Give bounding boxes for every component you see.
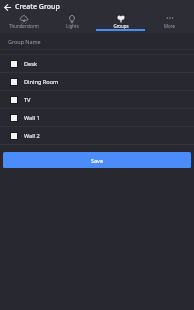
staticText: More bbox=[164, 23, 175, 29]
button[interactable]: Wall 2 bbox=[0, 127, 194, 144]
staticText: Create Group bbox=[15, 2, 60, 12]
staticText: Dining Room bbox=[24, 78, 59, 86]
button[interactable]: More bbox=[145, 14, 194, 33]
button[interactable]: Desk bbox=[0, 55, 194, 72]
button[interactable]: Save bbox=[3, 152, 191, 168]
staticText: Wall 2 bbox=[24, 132, 40, 140]
staticText: Wall 1 bbox=[24, 114, 40, 122]
staticText: Lights bbox=[66, 23, 79, 29]
button[interactable]: TV bbox=[0, 91, 194, 108]
staticText: TV bbox=[24, 96, 31, 104]
staticText: Save bbox=[91, 157, 104, 164]
button[interactable]: Wall 1 bbox=[0, 109, 194, 126]
staticText: Thunderstorm bbox=[9, 23, 39, 29]
staticText: Desk bbox=[24, 60, 37, 68]
staticText: Groups bbox=[113, 23, 129, 29]
button[interactable]: Thunderstorm bbox=[0, 14, 48, 33]
button[interactable]: Lights bbox=[48, 14, 96, 33]
staticText: Group Name bbox=[8, 38, 41, 45]
button[interactable]: Groups bbox=[96, 14, 145, 33]
button[interactable]: Dining Room bbox=[0, 73, 194, 90]
button[interactable]: Back bbox=[0, 0, 15, 14]
